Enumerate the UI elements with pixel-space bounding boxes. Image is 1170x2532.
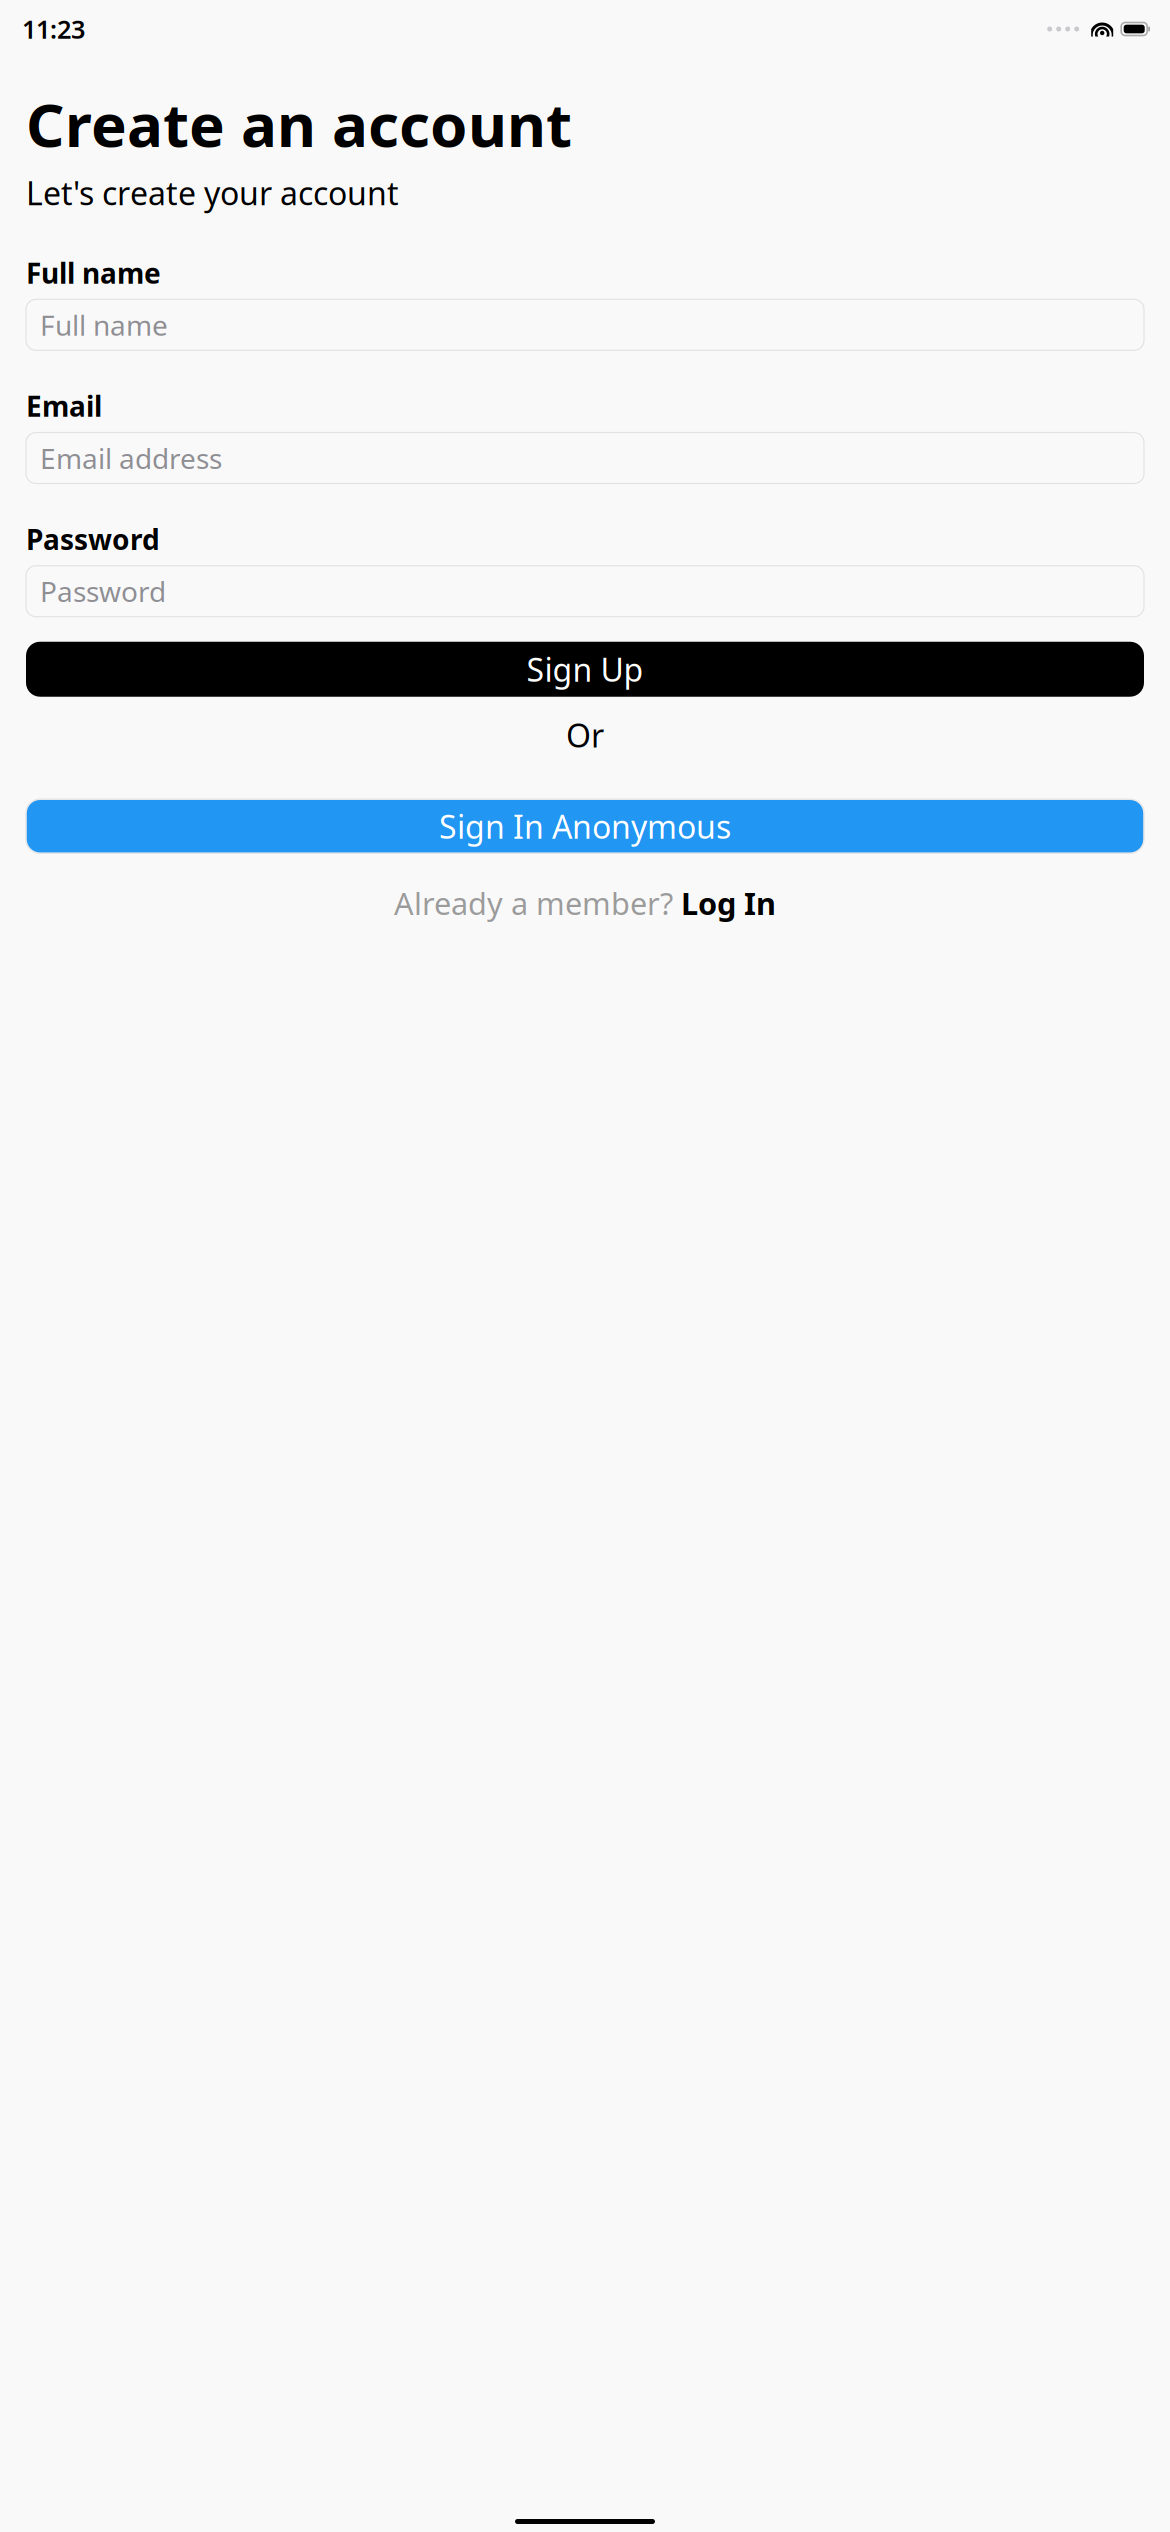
button[interactable]: Full name [26,299,1144,350]
staticText: Password [26,520,160,558]
staticText: Sign In Anonymous [439,805,731,847]
button[interactable]: Sign Up [26,642,1144,697]
staticText: Email [26,387,102,425]
staticText: Full name [40,306,168,343]
staticText: Or [566,714,604,756]
button[interactable]: Password [26,566,1144,617]
staticText: Email address [40,439,222,477]
staticText: Full name [26,254,161,291]
button[interactable]: Email address [26,432,1144,483]
button[interactable]: Sign In Anonymous [26,799,1144,853]
staticText: 11:23 [22,12,85,46]
staticText: Create an account [26,84,572,164]
staticText: Let's create your account [26,172,399,214]
staticText: Sign Up [526,648,643,690]
button[interactable]: Already a member? [26,886,1144,920]
staticText: Already a member? [394,883,681,924]
staticText: Password [40,573,166,610]
staticText: Log In [681,883,776,924]
